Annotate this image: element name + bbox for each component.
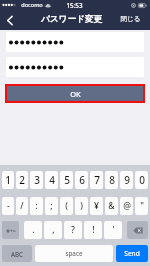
staticText: @	[123, 200, 131, 212]
staticText: 4	[49, 173, 55, 187]
staticText: -	[7, 200, 10, 212]
staticText: "	[140, 200, 144, 212]
staticText: ¥	[94, 200, 99, 212]
button[interactable]: )	[75, 197, 88, 215]
button[interactable]: 5	[60, 171, 73, 189]
staticText: !	[92, 224, 95, 236]
button[interactable]: 9	[120, 171, 133, 189]
staticText: パスワード変更	[41, 14, 102, 25]
staticText: 15:53	[66, 1, 83, 10]
staticText: 1	[5, 173, 11, 187]
staticText: /	[20, 200, 24, 212]
button[interactable]: OK	[7, 86, 143, 101]
button[interactable]: "	[135, 197, 148, 215]
button[interactable]: (	[60, 197, 73, 215]
staticText: &	[108, 200, 115, 212]
staticText: :	[35, 200, 38, 212]
staticText: docomo	[21, 1, 43, 9]
staticText: #+=	[6, 227, 16, 234]
button[interactable]: 8	[105, 171, 118, 189]
button[interactable]: .	[24, 221, 42, 239]
button[interactable]: -	[2, 197, 14, 215]
staticText: 3	[34, 173, 40, 187]
button[interactable]: Back	[0, 10, 19, 30]
staticText: 5	[64, 173, 70, 187]
staticText: (	[65, 200, 68, 212]
button[interactable]: 7	[90, 171, 103, 189]
staticText: 9	[124, 173, 130, 187]
button[interactable]: 3	[30, 171, 43, 189]
button[interactable]	[6, 57, 144, 77]
button[interactable]: ?	[64, 221, 82, 239]
staticText: .	[32, 224, 35, 236]
button[interactable]: '	[104, 221, 122, 239]
button[interactable]: :	[30, 197, 43, 215]
staticText: ABC	[11, 250, 23, 258]
button[interactable]: 1	[2, 171, 14, 189]
staticText: ,	[52, 224, 55, 236]
button[interactable]: ABC	[2, 245, 32, 262]
staticText: '	[112, 224, 115, 236]
button[interactable]: ,	[44, 221, 62, 239]
button[interactable]: &	[105, 197, 118, 215]
staticText: 7	[94, 173, 100, 187]
staticText: Send	[124, 249, 140, 258]
staticText: )	[80, 200, 83, 212]
staticText: ;	[50, 200, 53, 212]
button[interactable]: space	[35, 245, 113, 262]
button[interactable]: !	[84, 221, 102, 239]
button[interactable]: 6	[75, 171, 88, 189]
button[interactable]: 閉じる	[120, 15, 141, 23]
button[interactable]	[6, 32, 144, 52]
staticText: OK	[70, 89, 81, 99]
staticText: ?	[71, 224, 75, 236]
button[interactable]: Backspace	[127, 221, 148, 239]
staticText: space	[65, 249, 83, 258]
staticText: 6	[79, 173, 85, 187]
button[interactable]: 2	[16, 171, 28, 189]
button[interactable]: /	[16, 197, 28, 215]
staticText: 2	[19, 173, 25, 187]
button[interactable]: @	[120, 197, 133, 215]
button[interactable]: ;	[45, 197, 58, 215]
staticText: 8	[109, 173, 115, 187]
button[interactable]: 4	[45, 171, 58, 189]
button[interactable]: 0	[135, 171, 148, 189]
staticText: 0	[139, 173, 145, 187]
button[interactable]: Send	[116, 245, 148, 262]
button[interactable]: #+=	[2, 221, 19, 239]
staticText: 閉じる	[120, 15, 141, 23]
button[interactable]: ¥	[90, 197, 103, 215]
